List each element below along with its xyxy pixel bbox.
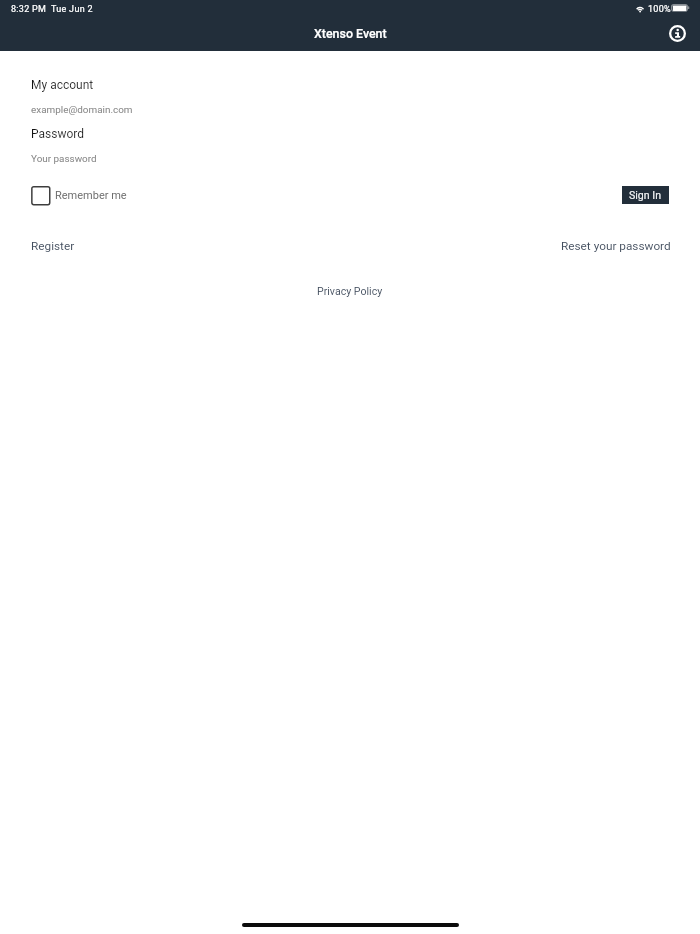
button[interactable]: Reset your password: [555, 233, 677, 259]
staticText: example@domain.com: [31, 104, 133, 116]
staticText: Remember me: [55, 189, 127, 202]
staticText: Xtenso Event: [314, 26, 387, 41]
staticText: My account: [31, 78, 94, 92]
staticText: 8:32 PM: [11, 4, 47, 15]
staticText: Privacy Policy: [317, 285, 383, 297]
staticText: Reset your password: [561, 239, 671, 253]
staticText: 100%: [648, 4, 671, 15]
button[interactable]: Privacy Policy: [309, 279, 391, 303]
button[interactable]: Register: [25, 233, 81, 259]
staticText: Tue Jun 2: [51, 4, 93, 15]
staticText: Your password: [31, 153, 97, 165]
button[interactable]: Remember me: [31, 186, 127, 205]
staticText: Password: [31, 127, 85, 141]
button[interactable]: Information: [663, 19, 692, 48]
button[interactable]: Sign In: [622, 186, 669, 204]
staticText: Sign In: [629, 189, 662, 201]
staticText: Register: [31, 239, 75, 253]
